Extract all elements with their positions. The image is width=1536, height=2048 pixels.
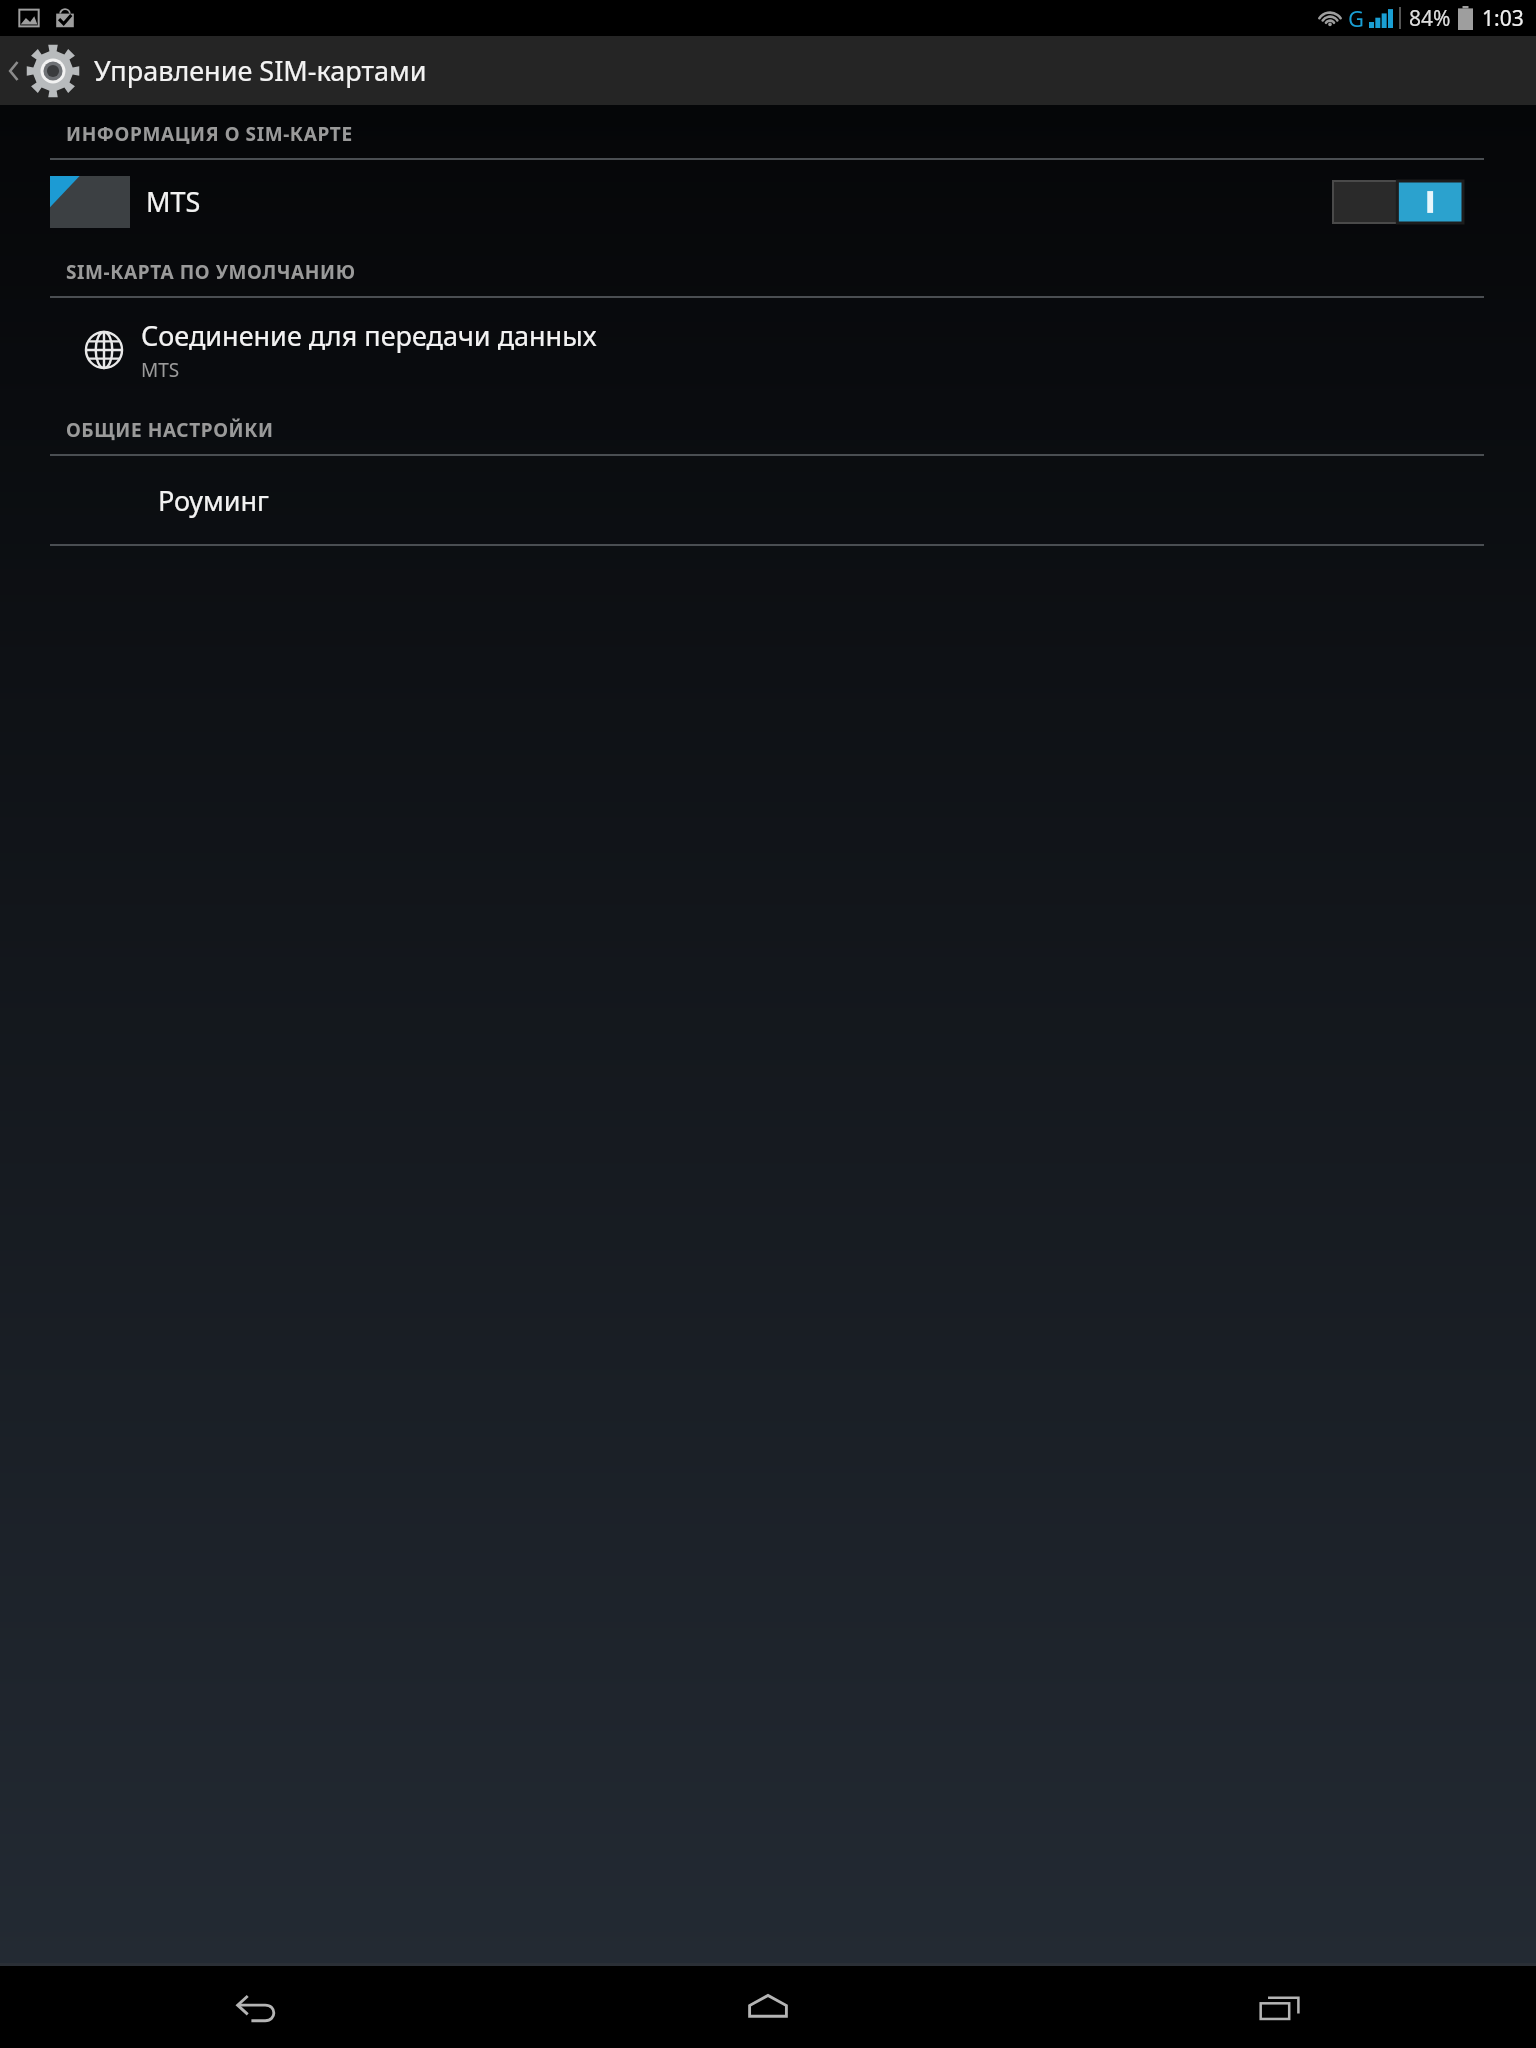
staticText: ИНФОРМАЦИЯ О SIM-КАРТЕ — [66, 121, 353, 147]
staticText: ОБЩИЕ НАСТРОЙКИ — [66, 417, 274, 443]
staticText: Соединение для передачи данных — [141, 317, 597, 354]
staticText: Управление SIM-картами — [94, 52, 427, 89]
button[interactable]: Соединение для передачи данных — [0, 298, 1536, 401]
staticText: MTS — [141, 357, 180, 383]
staticText: MTS — [146, 183, 201, 220]
staticText: 1:03 — [1482, 4, 1524, 33]
button[interactable]: SIM enabled toggle — [1333, 181, 1463, 223]
button[interactable]: Back — [0, 36, 1536, 105]
staticText: SIM-КАРТА ПО УМОЛЧАНИЮ — [66, 259, 356, 285]
button[interactable]: MTS — [0, 160, 1536, 243]
staticText: Роуминг — [158, 482, 269, 519]
staticText: 84% — [1409, 4, 1451, 33]
button[interactable]: Recent apps — [1024, 1966, 1536, 2048]
button[interactable]: Роуминг — [0, 456, 1536, 544]
button[interactable]: Home — [512, 1966, 1024, 2048]
staticText: G — [1348, 3, 1365, 33]
button[interactable]: Back — [0, 1966, 512, 2048]
